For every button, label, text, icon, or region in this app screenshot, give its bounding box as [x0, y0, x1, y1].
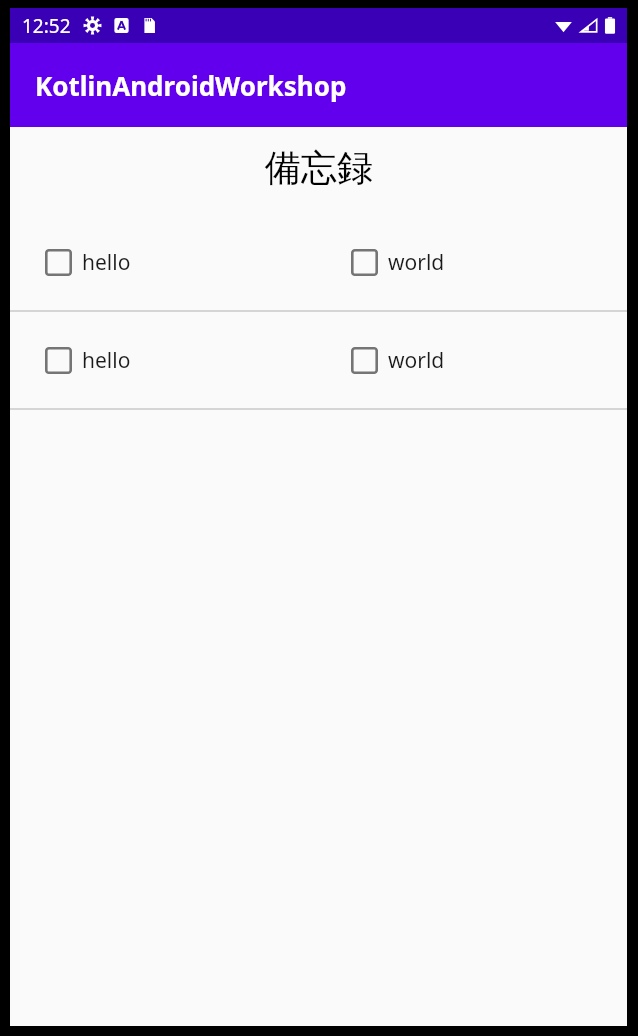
staticText: world: [388, 248, 445, 277]
staticText: 備忘録: [265, 145, 373, 190]
button[interactable]: Toggle world: [318, 312, 627, 408]
button[interactable]: Toggle world: [318, 214, 627, 310]
staticText: 12:52: [22, 13, 71, 39]
staticText: world: [388, 346, 445, 375]
button[interactable]: Toggle world: [351, 347, 378, 374]
button[interactable]: Toggle world: [351, 249, 378, 276]
button[interactable]: Toggle hello: [45, 347, 72, 374]
staticText: hello: [82, 346, 131, 375]
button[interactable]: Toggle hello: [10, 214, 318, 310]
staticText: hello: [82, 248, 131, 277]
button[interactable]: Toggle hello: [10, 312, 318, 408]
staticText: KotlinAndroidWorkshop: [35, 68, 347, 103]
button[interactable]: Toggle hello: [45, 249, 72, 276]
